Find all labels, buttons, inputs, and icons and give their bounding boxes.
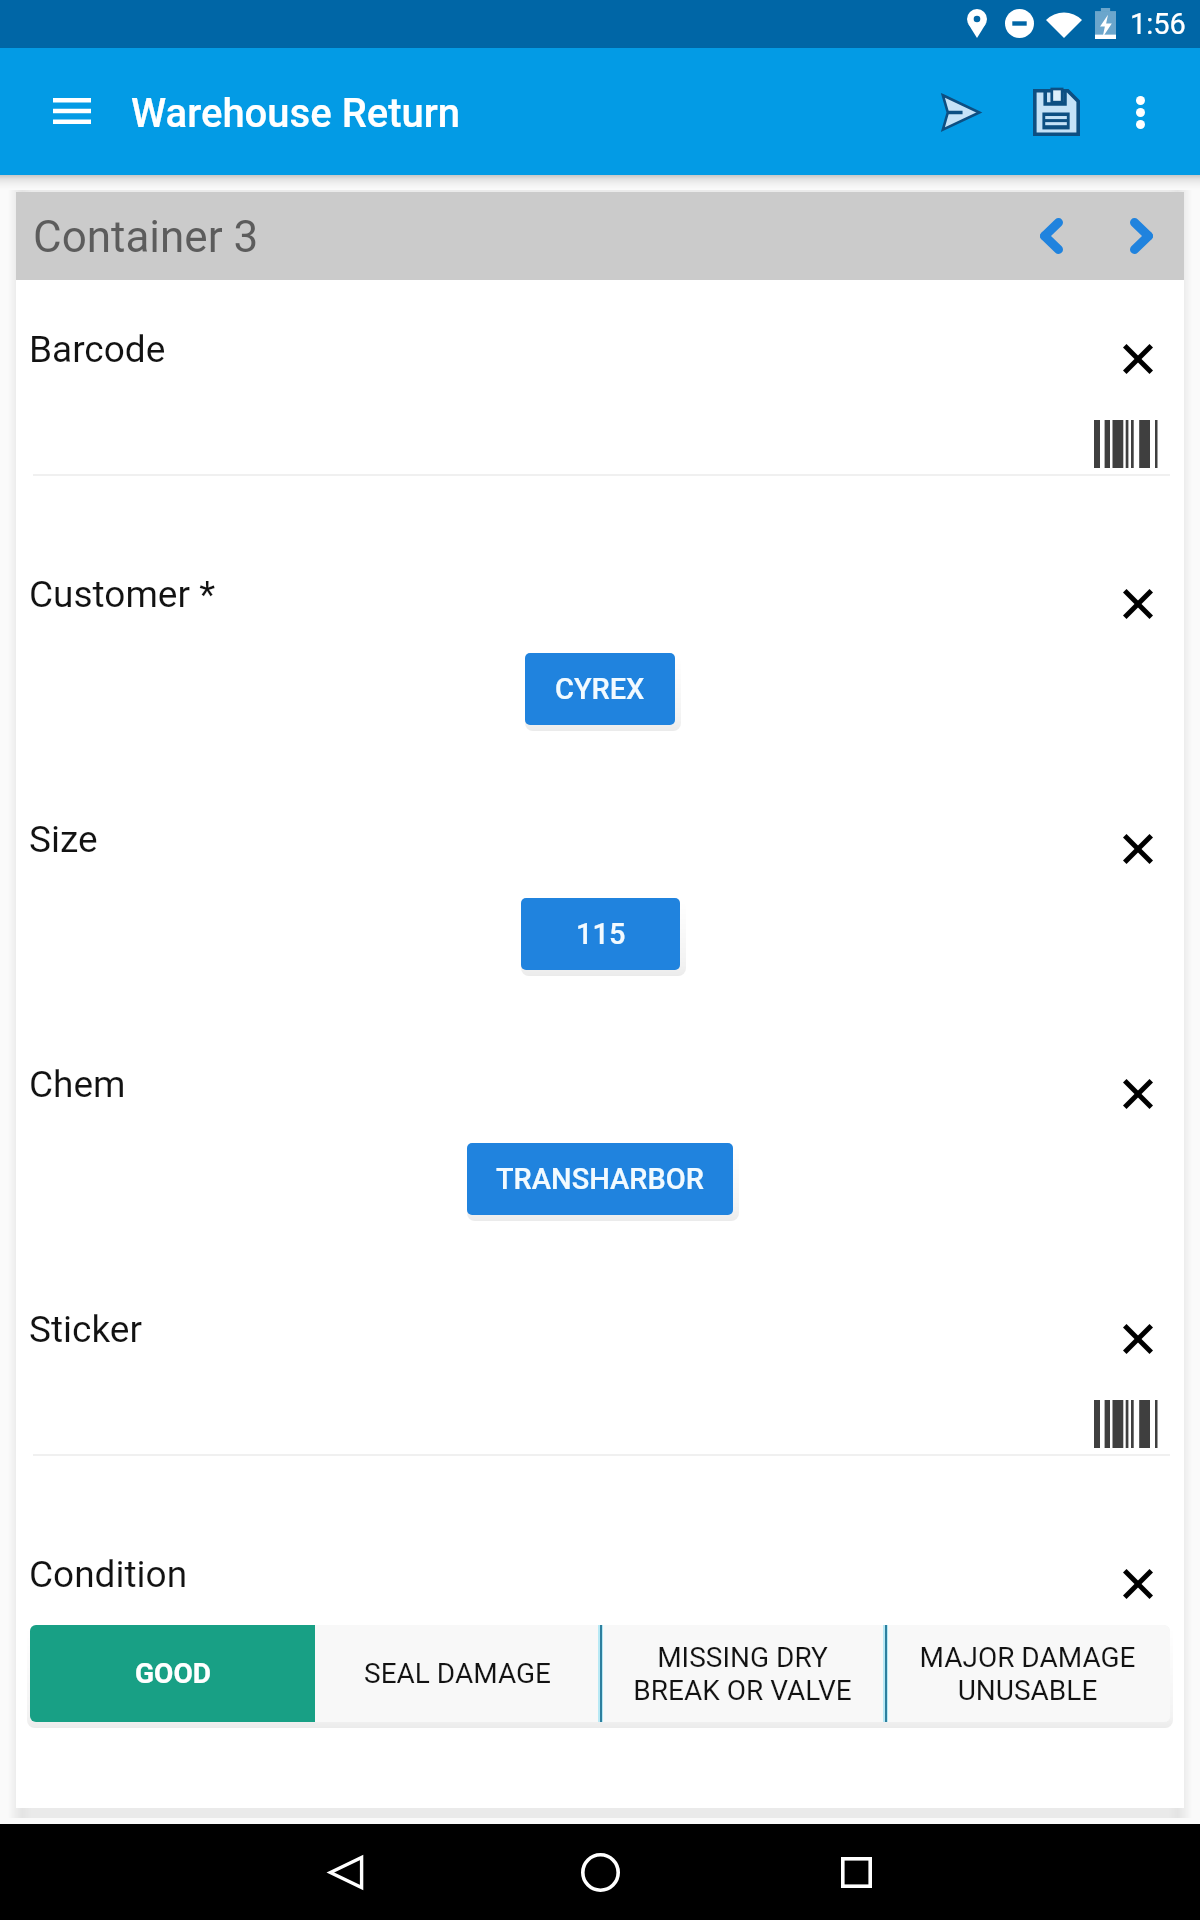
staticText: Warehouse Return (131, 90, 460, 137)
button[interactable]: TRANSHARBOR (467, 1143, 733, 1215)
button[interactable]: Home (552, 1824, 648, 1920)
button[interactable]: Save (1008, 64, 1104, 160)
button[interactable]: Open navigation menu (32, 71, 112, 151)
staticText: 1:56 (1130, 7, 1186, 41)
button[interactable]: Scan barcode (1086, 406, 1166, 476)
staticText: MISSING DRY BREAK OR VALVE (633, 1641, 852, 1707)
staticText: TRANSHARBOR (496, 1162, 704, 1196)
staticText: 115 (576, 917, 626, 951)
button[interactable]: Previous container (1007, 192, 1095, 280)
staticText: Sticker (29, 1308, 142, 1351)
button[interactable]: CYREX (525, 653, 675, 725)
staticText: CYREX (555, 672, 645, 706)
button[interactable]: Clear Size (1098, 809, 1178, 889)
button[interactable]: Back (298, 1824, 394, 1920)
button[interactable]: Clear Customer * (1098, 564, 1178, 644)
button[interactable]: Next container (1097, 192, 1185, 280)
button[interactable]: Clear Condition (1098, 1544, 1178, 1624)
staticText: Customer * (29, 573, 216, 616)
staticText: Barcode (29, 328, 166, 371)
button[interactable]: MISSING DRY BREAK OR VALVE (600, 1625, 885, 1722)
staticText: Size (29, 818, 98, 861)
button[interactable]: MAJOR DAMAGE UNUSABLE (885, 1625, 1170, 1722)
staticText: Container 3 (33, 211, 259, 263)
button[interactable]: SEAL DAMAGE (315, 1625, 600, 1722)
button[interactable]: More options (1092, 64, 1188, 160)
button[interactable]: GOOD (30, 1625, 315, 1722)
staticText: MAJOR DAMAGE UNUSABLE (919, 1641, 1136, 1707)
button[interactable]: Send (912, 64, 1008, 160)
staticText: GOOD (135, 1657, 211, 1690)
staticText: Chem (29, 1063, 126, 1106)
button[interactable]: Clear Sticker (1098, 1299, 1178, 1379)
staticText: SEAL DAMAGE (364, 1657, 551, 1690)
button[interactable]: 115 (521, 898, 680, 970)
button[interactable]: Clear Chem (1098, 1054, 1178, 1134)
staticText: Condition (29, 1553, 188, 1596)
button[interactable]: Recent apps (808, 1824, 904, 1920)
button[interactable]: Scan barcode (1086, 1386, 1166, 1456)
button[interactable]: Clear Barcode (1098, 319, 1178, 399)
